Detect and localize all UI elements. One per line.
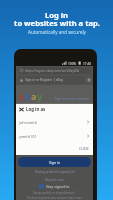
- button[interactable]: Sign in: [18, 157, 91, 167]
- staticText: CLOSE: [79, 147, 89, 151]
- staticText: 17:40: [83, 62, 92, 66]
- button[interactable]: jsmith101: [16, 129, 93, 143]
- button[interactable]: Sign in or Register | eBay: [18, 76, 85, 84]
- button[interactable]: johnsmith: [16, 115, 93, 129]
- staticText: jsmith101: [19, 134, 37, 139]
- staticText: e: [19, 90, 25, 102]
- staticText: y: [37, 90, 43, 102]
- staticText: johnsmith: [19, 120, 38, 125]
- staticText: Automatically and securely: [28, 29, 86, 35]
- button[interactable]: https://signin.ebay.com/ws/eBayISA: [18, 67, 91, 74]
- staticText: Using a public or shared device?: [33, 191, 76, 195]
- staticText: 100%: [68, 62, 77, 66]
- button[interactable]: Stay signed in: [16, 184, 93, 189]
- staticText: Having problems signing in?: [35, 170, 75, 174]
- staticText: Uncheck to protect your account. Learn m…: [27, 196, 83, 200]
- staticText: Sign in or Register | eBay: [25, 78, 64, 82]
- staticText: a: [31, 90, 37, 102]
- staticText: https://signin.ebay.com/ws/eBayISA: [25, 69, 79, 73]
- staticText: Register now: [45, 178, 64, 182]
- staticText: Log in as: [26, 106, 46, 112]
- staticText: Log in: [45, 10, 68, 20]
- button[interactable]: New tab: [85, 76, 93, 84]
- staticText: Sign in: [49, 160, 61, 165]
- staticText: b: [25, 90, 31, 102]
- button[interactable]: CLOSE: [78, 146, 90, 152]
- staticText: to websites with a tap.: [14, 18, 100, 28]
- staticText: Stay signed in: [46, 184, 70, 189]
- staticText: Sign in to your account: [55, 97, 90, 101]
